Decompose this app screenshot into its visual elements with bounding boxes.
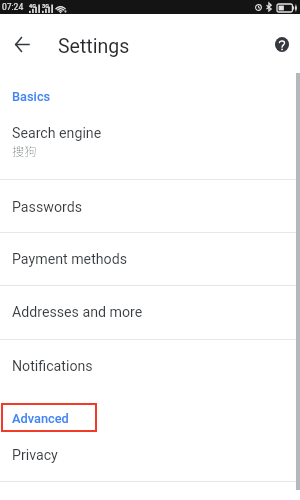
staticText: 07:24	[2, 2, 24, 12]
button[interactable]: Advanced	[0, 403, 300, 427]
button[interactable]: Passwords	[0, 179, 300, 233]
button[interactable]: Search engine	[0, 117, 300, 179]
staticText: Search engine	[12, 125, 102, 142]
staticText: 4G	[29, 3, 36, 9]
staticText: Privacy	[12, 447, 58, 464]
button[interactable]: Payment methods	[0, 232, 300, 285]
staticText: Settings	[58, 35, 130, 58]
button[interactable]: Notifications	[0, 339, 300, 392]
staticText: 3G	[42, 3, 49, 9]
staticText: Basics	[12, 89, 51, 104]
staticText: Payment methods	[12, 251, 127, 268]
staticText: 搜狗	[12, 142, 37, 160]
staticText: Notifications	[12, 358, 93, 375]
button[interactable]: Back	[8, 30, 36, 58]
button[interactable]: Help	[267, 30, 296, 59]
button[interactable]: Privacy	[0, 428, 300, 481]
button[interactable]: Addresses and more	[0, 285, 300, 338]
staticText: Advanced	[12, 411, 69, 426]
staticText: Passwords	[12, 199, 82, 216]
staticText: Addresses and more	[12, 304, 143, 321]
button[interactable]: Basics	[0, 81, 300, 105]
